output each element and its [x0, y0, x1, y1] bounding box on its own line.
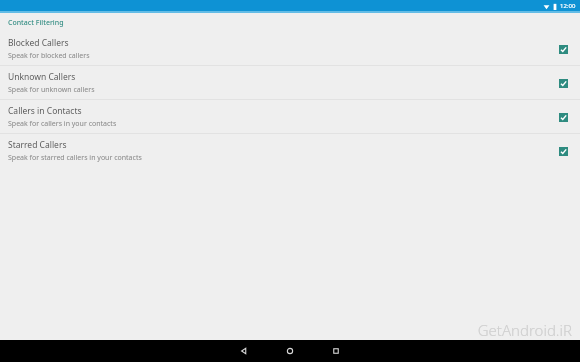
button[interactable]: Toggle setting — [556, 42, 570, 56]
button[interactable]: Starred Callers — [0, 134, 580, 167]
button[interactable]: Toggle setting — [556, 144, 570, 158]
staticText: Starred Callers — [8, 139, 67, 151]
button[interactable]: Toggle setting — [556, 110, 570, 124]
staticText: Blocked Callers — [8, 37, 69, 49]
button[interactable]: Back — [221, 340, 267, 362]
button[interactable]: Callers in Contacts — [0, 100, 580, 133]
staticText: 12:00 — [560, 2, 576, 10]
staticText: Callers in Contacts — [8, 105, 82, 117]
staticText: Speak for unknown callers — [8, 85, 95, 95]
staticText: GetAndroid.iR — [477, 320, 572, 340]
staticText: Speak for blocked callers — [8, 51, 90, 61]
staticText: Speak for starred callers in your contac… — [8, 153, 142, 163]
button[interactable]: Recent apps — [313, 340, 359, 362]
staticText: Speak for callers in your contacts — [8, 119, 117, 129]
staticText: Contact Filtering — [8, 18, 64, 28]
button[interactable]: Unknown Callers — [0, 66, 580, 99]
staticText: Unknown Callers — [8, 71, 76, 83]
button[interactable]: Toggle setting — [556, 76, 570, 90]
button[interactable]: Home — [267, 340, 313, 362]
button[interactable]: Blocked Callers — [0, 32, 580, 65]
